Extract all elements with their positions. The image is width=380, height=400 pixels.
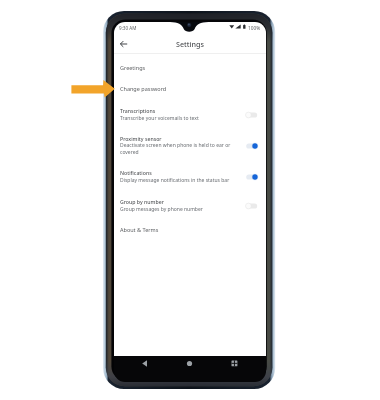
button[interactable]: Switch off xyxy=(244,109,260,121)
button[interactable] xyxy=(114,196,266,213)
staticText: Transcribe your voicemails to text xyxy=(120,115,199,122)
button[interactable]: Back xyxy=(138,357,151,370)
staticText: Deactivate screen when phone is held to … xyxy=(120,142,231,149)
button[interactable] xyxy=(114,58,266,78)
staticText: Group by number xyxy=(120,198,164,205)
button[interactable]: Switch off xyxy=(244,200,260,212)
staticText: 9:30 AM xyxy=(119,25,137,31)
staticText: Display message notifications in the sta… xyxy=(120,177,230,184)
staticText: Notifications xyxy=(120,169,152,176)
staticText: Proximity sensor xyxy=(120,135,162,142)
staticText: Change password xyxy=(120,85,167,92)
button[interactable] xyxy=(114,105,266,122)
staticText: 100% xyxy=(248,25,261,32)
staticText: About & Terms xyxy=(120,226,159,233)
button[interactable]: Back xyxy=(118,38,130,50)
button[interactable] xyxy=(114,220,266,240)
staticText: Transcriptions xyxy=(120,107,156,114)
staticText: Settings xyxy=(114,39,266,49)
staticText: Group messages by phone number xyxy=(120,206,203,213)
button[interactable] xyxy=(114,79,266,99)
staticText: Greetings xyxy=(120,64,146,71)
button[interactable]: Recent apps xyxy=(228,357,241,370)
button[interactable] xyxy=(114,168,266,185)
button[interactable] xyxy=(114,133,266,157)
button[interactable]: Switch on xyxy=(244,171,260,183)
staticText: covered xyxy=(120,149,139,156)
button[interactable]: Home xyxy=(183,357,196,370)
button[interactable]: Switch on xyxy=(244,140,260,152)
